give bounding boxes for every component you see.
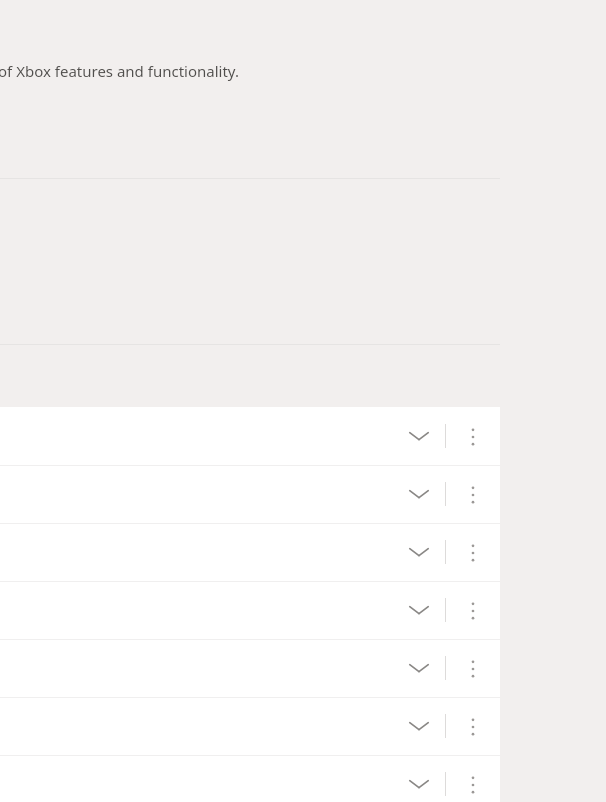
button[interactable]: Expand [0,697,500,755]
button[interactable]: More options [458,770,487,799]
button[interactable]: More options [458,422,487,451]
button[interactable]: Expand [0,755,500,802]
button[interactable]: More options [458,538,487,567]
button[interactable]: Expand [403,652,435,684]
button[interactable]: Expand [403,420,435,452]
button[interactable]: Expand [0,407,500,465]
button[interactable]: More options [458,480,487,509]
button[interactable]: Expand [0,581,500,639]
button[interactable]: Expand [403,478,435,510]
button[interactable]: Expand [0,523,500,581]
staticText: of Xbox features and functionality. [0,61,239,81]
button[interactable]: Expand [403,536,435,568]
button[interactable]: Expand [403,768,435,800]
button[interactable]: More options [458,654,487,683]
button[interactable]: Expand [0,639,500,697]
button[interactable]: More options [458,712,487,741]
button[interactable]: Expand [403,710,435,742]
button[interactable]: More options [458,596,487,625]
button[interactable]: Expand [403,594,435,626]
button[interactable]: Expand [0,465,500,523]
